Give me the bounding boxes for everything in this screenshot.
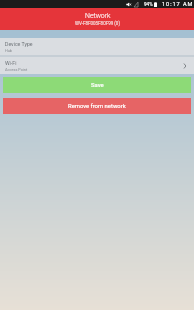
button[interactable]: Wi-Fi <box>0 57 194 74</box>
staticText: Hub <box>5 48 12 52</box>
button[interactable]: Device Type <box>0 38 194 55</box>
staticText: Save <box>91 82 104 89</box>
staticText: Device Type <box>5 41 33 47</box>
staticText: Network <box>85 12 111 20</box>
staticText: Wi-Fi <box>5 60 17 66</box>
staticText: Remove from network <box>68 103 126 110</box>
other: Open Wi-Fi settings <box>183 63 187 69</box>
staticText: WV-F8F005F80F99 (0) <box>75 21 120 26</box>
button[interactable]: Save <box>3 77 191 93</box>
staticText: 94% <box>144 2 153 7</box>
staticText: 10:17 AM <box>162 1 194 8</box>
staticText: Access Point <box>5 67 28 71</box>
button[interactable]: Remove from network <box>3 98 191 114</box>
